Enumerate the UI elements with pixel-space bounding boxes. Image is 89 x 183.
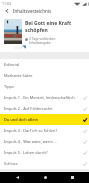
staticText: Impuls 1 - Ein Mensch, leidenschaftlich [4,95,81,100]
staticText: Impuls 2 - Auf Feldersuche [4,106,81,111]
staticText: Impuls 4 - Was wäre, wenn ... [4,139,81,144]
button[interactable]: Impuls 2 - Auf Feldersuche [0,103,89,114]
button[interactable]: Bei Gott eine Kraft schöpfen [0,15,89,52]
button[interactable]: Impuls 1 - Ein Mensch, leidenschaftlich [0,92,89,103]
staticText: Bei Gott eine Kraft schöpfen [25,20,86,34]
staticText: 11:02 [2,1,12,6]
staticText: Markante Sätze [4,73,87,78]
button[interactable]: Recent apps [62,172,82,183]
button[interactable]: Impuls 3 - Darf ich so fühlen? [0,125,89,136]
staticText: Schluss [4,161,81,166]
staticText: Impuls 5 - Leben durch? [4,150,81,155]
button[interactable]: Impuls 5 - Leben durch? [0,147,89,158]
staticText: Impuls 3 - Darf ich so fühlen? [4,128,81,133]
staticText: 3 Tage verbleiben Inhaltsangabe [29,37,56,45]
button[interactable]: Back [0,7,13,15]
staticText: Inhaltsverzeichnis [13,8,52,14]
button[interactable]: Tipps [0,81,89,92]
button[interactable]: Impuls 4 - Was wäre, wenn ... [0,136,89,147]
button[interactable]: Back [7,172,27,183]
staticText: Tipps [4,84,87,89]
staticText: Du und dich allein [4,117,81,122]
staticText: Editorial [4,62,87,67]
button[interactable]: Du und dich allein [0,114,89,125]
button[interactable]: Home [35,172,55,183]
button[interactable]: Markante Sätze [0,70,89,81]
button[interactable]: Editorial [0,59,89,70]
button[interactable]: Schluss [0,158,89,169]
